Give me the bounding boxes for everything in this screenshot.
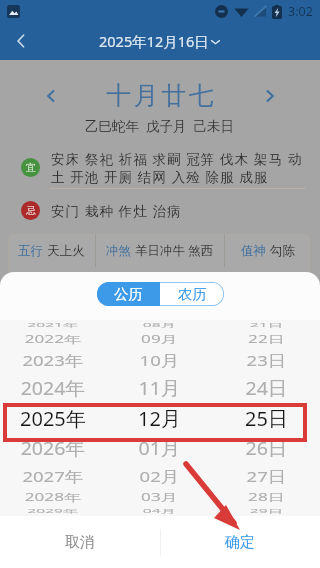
button[interactable]: 2025年12月16日 <box>99 31 221 51</box>
staticText: 2024年 <box>21 376 85 401</box>
staticText: 勾陈 <box>270 243 295 259</box>
staticText: 3:02 <box>288 3 313 20</box>
staticText: 冲煞 <box>106 243 131 259</box>
button[interactable]: 取消 <box>0 516 160 568</box>
staticText: 11月 <box>138 376 181 401</box>
staticText: 04月 <box>143 508 176 515</box>
staticText: 羊日冲牛 煞西 <box>135 242 214 259</box>
staticText: 01月 <box>138 436 181 461</box>
staticText: 2021年 <box>27 322 79 329</box>
staticText: 27日 <box>247 466 286 487</box>
staticText: 21日 <box>250 322 283 329</box>
staticText: 2022年 <box>25 333 81 346</box>
staticText: 乙巳蛇年 戊子月 己未日 <box>85 117 235 135</box>
staticText: 2023年 <box>22 350 84 371</box>
button[interactable]: 确定 <box>160 516 320 568</box>
staticText: 2027年 <box>22 466 84 487</box>
staticText: 25日 <box>245 405 288 432</box>
button[interactable]: 农历 <box>160 282 224 306</box>
staticText: 取消 <box>65 533 95 552</box>
staticText: 26日 <box>245 436 288 461</box>
staticText: 23日 <box>247 350 286 371</box>
staticText: 2029年 <box>27 508 79 515</box>
staticText: 天上火 <box>47 243 85 259</box>
button[interactable]: Next day <box>262 88 278 104</box>
staticText: 28日 <box>248 491 285 504</box>
staticText: 2025年 <box>20 405 86 432</box>
staticText: 2028年 <box>25 491 81 504</box>
button[interactable]: 值神 <box>225 234 310 267</box>
staticText: 确定 <box>225 533 255 552</box>
staticText: 2026年 <box>21 436 85 461</box>
staticText: 宜 <box>26 161 36 174</box>
staticText: 03月 <box>141 491 178 504</box>
staticText: 24日 <box>245 376 288 401</box>
button[interactable]: Back <box>4 24 38 58</box>
staticText: 22日 <box>248 333 285 346</box>
staticText: 02月 <box>140 466 179 487</box>
staticText: 五行 <box>18 243 43 259</box>
staticText: 值神 <box>241 243 266 259</box>
button[interactable]: 五行 <box>8 234 95 267</box>
button[interactable]: Previous day <box>43 88 59 104</box>
button[interactable]: 冲煞 <box>96 234 224 267</box>
staticText: 2025年12月16日 <box>99 31 209 51</box>
button[interactable]: 公历 <box>97 282 160 306</box>
staticText: 安床 祭祀 祈福 求嗣 冠笄 伐木 架马 动 土 开池 开厕 结网 入殓 除服 … <box>51 150 303 186</box>
staticText: 09月 <box>141 333 178 346</box>
staticText: 十月廿七 <box>105 80 215 111</box>
staticText: 公历 <box>114 285 143 303</box>
staticText: 安门 栽种 作灶 治病 <box>51 202 182 220</box>
staticText: 12月 <box>138 405 181 432</box>
staticText: 10月 <box>140 350 179 371</box>
staticText: 农历 <box>178 285 207 303</box>
staticText: 忌 <box>26 204 36 217</box>
staticText: 08月 <box>143 322 176 329</box>
staticText: 29日 <box>250 508 283 515</box>
